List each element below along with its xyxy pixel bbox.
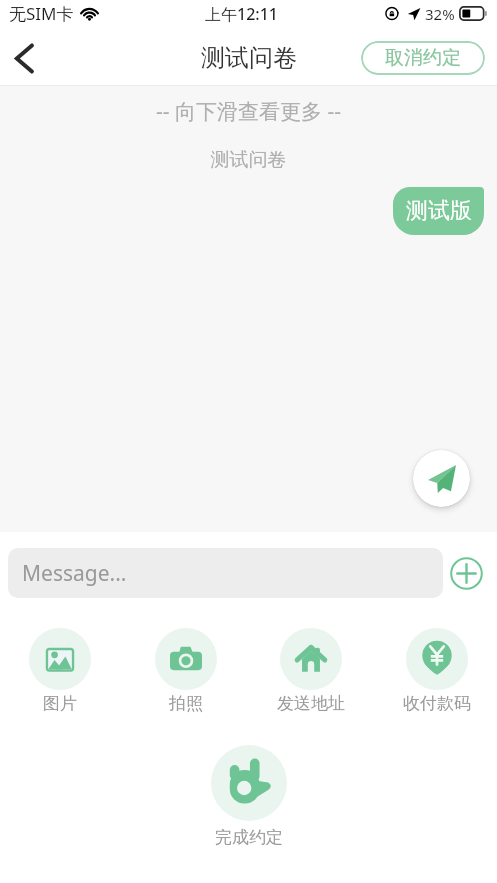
button[interactable]: 测试版 bbox=[393, 187, 484, 235]
staticText: 无SIM卡 bbox=[9, 2, 74, 25]
staticText: Message... bbox=[22, 559, 127, 588]
button[interactable]: 拍照 bbox=[135, 628, 237, 714]
staticText: 拍照 bbox=[169, 693, 203, 714]
staticText: -- 向下滑查看更多 -- bbox=[0, 97, 497, 126]
staticText: 完成约定 bbox=[215, 827, 283, 848]
staticText: 测试问卷 bbox=[201, 43, 297, 73]
button[interactable]: 图片 bbox=[9, 628, 111, 714]
staticText: 收付款码 bbox=[403, 693, 471, 714]
button[interactable]: Back bbox=[2, 36, 46, 80]
staticText: 发送地址 bbox=[277, 693, 345, 714]
staticText: 取消约定 bbox=[385, 46, 461, 70]
button[interactable]: 发送地址 bbox=[260, 628, 362, 714]
staticText: 测试版 bbox=[406, 197, 472, 225]
button[interactable]: 完成约定 bbox=[211, 745, 287, 848]
staticText: 上午12:11 bbox=[205, 3, 278, 25]
button[interactable]: Send bbox=[413, 450, 470, 507]
button[interactable]: 收付款码 bbox=[386, 628, 488, 714]
staticText: 图片 bbox=[43, 693, 77, 714]
button[interactable]: Message... bbox=[8, 548, 443, 598]
staticText: 32% bbox=[425, 4, 455, 24]
staticText: 测试问卷 bbox=[0, 148, 497, 172]
button[interactable]: Add bbox=[444, 548, 489, 598]
button[interactable]: 取消约定 bbox=[361, 41, 485, 75]
